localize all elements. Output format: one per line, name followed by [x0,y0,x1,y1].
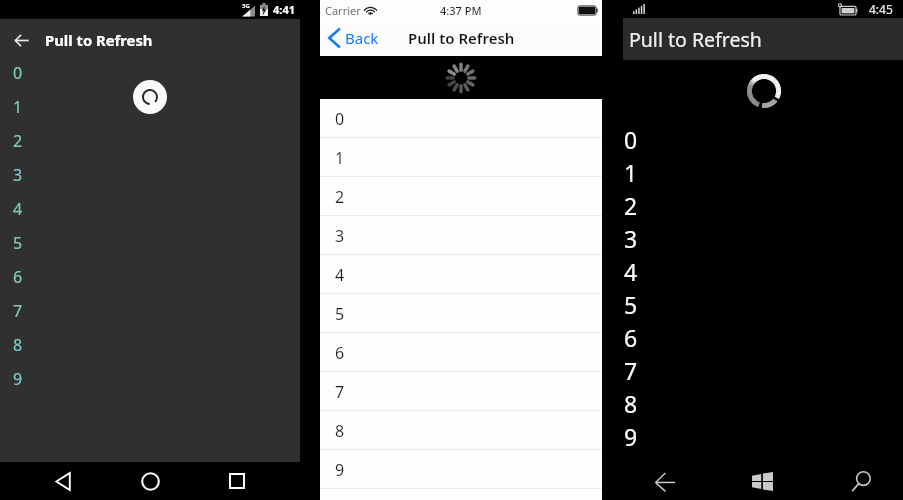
button[interactable]: 3 [320,216,602,255]
button[interactable]: 9 [0,362,300,396]
staticText: 9 [335,459,345,481]
staticText: 4:37 PM [440,3,482,18]
staticText: 6 [624,322,638,353]
button[interactable]: 6 [320,333,602,372]
staticText: Pull to Refresh [629,26,762,53]
staticText: 3 [13,164,23,186]
button[interactable]: 6 [0,260,300,294]
button[interactable]: 8 [0,328,300,362]
button[interactable]: 4 [0,192,300,226]
button[interactable]: 0 [0,56,300,90]
staticText: 4:45 [869,1,893,17]
button[interactable]: 8 [602,387,903,420]
button[interactable]: 2 [602,189,903,222]
button[interactable]: 4 [320,255,602,294]
staticText: 1 [335,147,345,169]
button[interactable]: 4 [602,255,903,288]
other: Refreshing [133,80,167,114]
staticText: 8 [13,334,23,356]
button[interactable]: 5 [320,294,602,333]
staticText: Pull to Refresh [45,30,153,50]
button[interactable]: 3 [0,158,300,192]
button[interactable]: Recents [217,462,257,500]
staticText: 3 [624,223,638,254]
staticText: 5 [624,289,638,320]
button[interactable]: 5 [602,288,903,321]
staticText: 1 [624,157,638,188]
staticText: Carrier [325,3,361,18]
button[interactable]: 8 [320,411,602,450]
button[interactable]: Back [328,28,379,48]
button[interactable]: 9 [320,450,602,489]
button[interactable]: 2 [0,124,300,158]
staticText: 6 [335,342,345,364]
button[interactable]: Start [711,460,807,500]
staticText: 7 [13,300,23,322]
staticText: 5 [13,232,23,254]
staticText: 4 [335,264,345,286]
staticText: 3 [335,225,345,247]
button[interactable]: 1 [0,90,300,124]
button[interactable]: 1 [602,156,903,189]
staticText: 0 [624,124,638,155]
staticText: Pull to Refresh [408,28,515,48]
button[interactable]: Search [807,460,903,500]
button[interactable]: Back [616,460,711,500]
button[interactable]: Home [130,462,170,500]
staticText: 0 [335,108,345,130]
button[interactable]: 0 [602,123,903,156]
button[interactable]: 9 [602,420,903,453]
staticText: 7 [335,381,345,403]
staticText: Back [345,28,379,48]
staticText: 8 [335,420,345,442]
button[interactable]: 5 [0,226,300,260]
staticText: 9 [624,421,638,452]
staticText: 4 [13,198,23,220]
button[interactable]: 7 [602,354,903,387]
button[interactable]: 3 [602,222,903,255]
staticText: 8 [624,388,638,419]
button[interactable]: Back [8,27,34,53]
button[interactable]: 7 [0,294,300,328]
staticText: 1 [13,96,23,118]
staticText: 7 [624,355,638,386]
staticText: 3G [242,2,250,10]
button[interactable]: 2 [320,177,602,216]
staticText: 2 [624,190,638,221]
button[interactable]: 6 [602,321,903,354]
button[interactable]: 0 [320,99,602,138]
staticText: 5 [335,303,345,325]
staticText: 4:41 [273,2,295,17]
button[interactable]: 1 [320,138,602,177]
staticText: 2 [335,186,345,208]
button[interactable]: 7 [320,372,602,411]
staticText: 0 [13,62,23,84]
staticText: 2 [13,130,23,152]
staticText: 4 [624,256,638,287]
staticText: 6 [13,266,23,288]
staticText: 9 [13,368,23,390]
button[interactable]: Back [43,462,83,500]
